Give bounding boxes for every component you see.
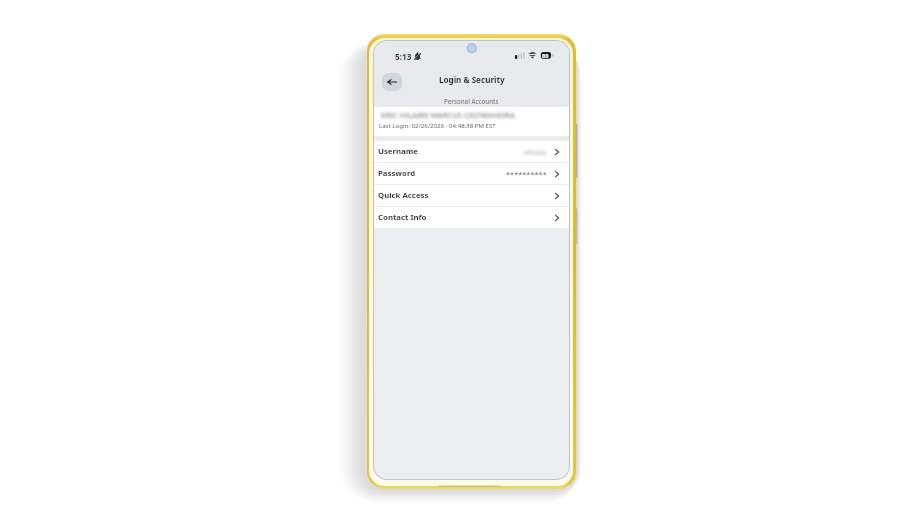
staticText: ERIC HILAIRE MARCUS CASTANHEIRA [381, 110, 515, 120]
button[interactable]: Username [374, 140, 569, 162]
button[interactable]: Contact Info [374, 206, 569, 229]
staticText: Last Login: 02/26/2026 - 04:48:38 PM EST [379, 121, 496, 129]
staticText: Quick Access [378, 190, 429, 201]
staticText: Personal Accounts [444, 97, 499, 105]
staticText: 80 [542, 52, 549, 60]
staticText: Contact Info [378, 212, 427, 223]
button[interactable]: Quick Access [374, 184, 569, 206]
staticText: Login & Security [439, 74, 505, 85]
staticText: Username [378, 146, 418, 157]
staticText: 5:13 [395, 51, 412, 62]
staticText: ********** [506, 169, 547, 179]
staticText: ehcast [524, 147, 547, 157]
button[interactable]: Back [382, 73, 402, 91]
staticText: Password [378, 168, 416, 179]
button[interactable]: Password [374, 162, 569, 184]
